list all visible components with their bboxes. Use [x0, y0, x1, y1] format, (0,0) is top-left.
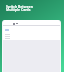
- button[interactable]: [5, 29, 9, 31]
- staticText: Switch Between Multiple Cards: [6, 4, 33, 12]
